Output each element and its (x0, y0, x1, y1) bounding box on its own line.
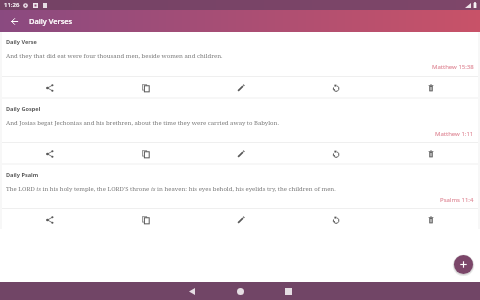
button[interactable]: Back (168, 282, 216, 300)
button[interactable]: Share (2, 209, 98, 229)
staticText: Daily Gospel (6, 105, 41, 113)
button[interactable]: Copy (98, 77, 193, 97)
button[interactable]: Home (216, 282, 264, 300)
button[interactable]: Delete (383, 209, 478, 229)
button[interactable]: Delete (383, 143, 478, 163)
staticText: Daily Verses (29, 16, 73, 26)
staticText: The LORD is in his holy temple, the LORD… (6, 185, 336, 193)
staticText: Daily Verse (6, 38, 37, 46)
staticText: And Josias begat Jechonias and his breth… (6, 119, 279, 127)
staticText: Matthew 15:38 (432, 63, 474, 71)
staticText: And they that did eat were four thousand… (6, 52, 223, 60)
staticText: Daily Psalm (6, 171, 39, 179)
button[interactable]: Delete (383, 77, 478, 97)
button[interactable]: Copy (98, 209, 193, 229)
button[interactable]: Share (2, 77, 98, 97)
staticText: 11:26 (4, 1, 20, 9)
button[interactable]: Copy (98, 143, 193, 163)
button[interactable]: Refresh (288, 77, 383, 97)
button[interactable]: Navigate up (6, 13, 22, 29)
button[interactable]: Refresh (288, 209, 383, 229)
button[interactable]: Add verse (452, 253, 475, 276)
button[interactable]: Recent apps (264, 282, 312, 300)
staticText: Matthew 1:11 (435, 130, 474, 138)
button[interactable]: Edit (193, 143, 288, 163)
button[interactable]: Share (2, 143, 98, 163)
staticText: Psalms 11:4 (440, 196, 474, 204)
button[interactable]: Edit (193, 209, 288, 229)
button[interactable]: Refresh (288, 143, 383, 163)
button[interactable]: Edit (193, 77, 288, 97)
